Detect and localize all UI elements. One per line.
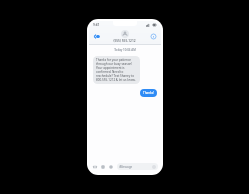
button[interactable]: Back <box>92 32 101 41</box>
staticText: Today 10:04 AM <box>93 48 157 52</box>
button[interactable]: Contact info <box>149 32 158 41</box>
staticText: (555) 555-1212 <box>113 39 136 43</box>
button[interactable]: Thanks! <box>140 89 157 97</box>
button[interactable]: Thanks for your patience through our bus… <box>93 56 140 84</box>
button[interactable]: iMessage <box>117 163 158 170</box>
staticText: Thanks for your patience through our bus… <box>96 58 137 82</box>
button[interactable]: Photos <box>108 164 114 170</box>
staticText: Thanks! <box>143 91 154 95</box>
staticText: iMessage <box>119 165 133 169</box>
staticText: 9:41 <box>93 23 100 27</box>
button[interactable]: Send <box>152 165 156 169</box>
button[interactable]: Apps <box>100 164 106 170</box>
button[interactable]: Camera <box>92 164 98 170</box>
